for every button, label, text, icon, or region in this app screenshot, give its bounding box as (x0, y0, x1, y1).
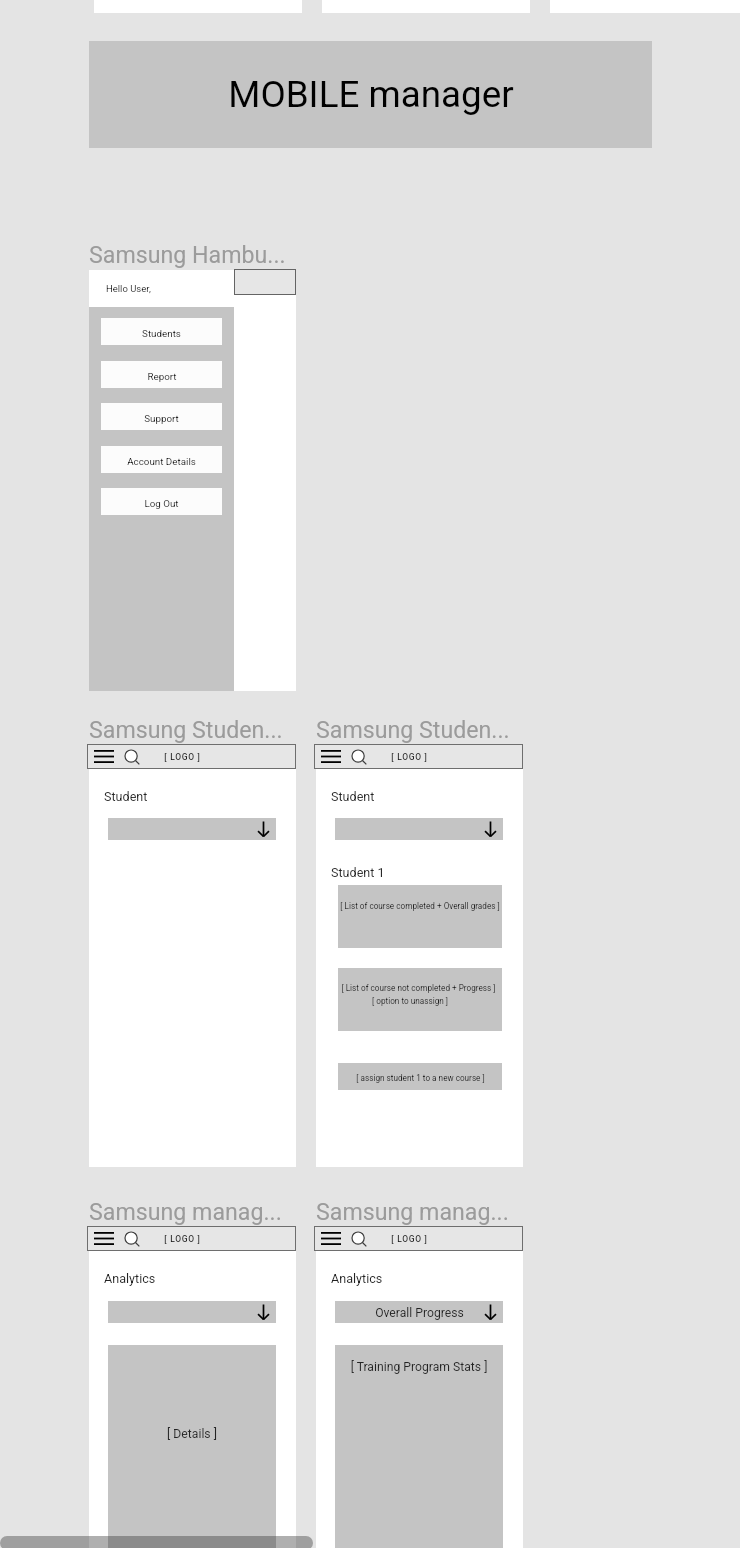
staticText: Samsung Hambu... (89, 241, 286, 268)
other: Expand dropdown (484, 821, 497, 837)
staticText: [ assign student 1 to a new course ] (356, 1073, 485, 1083)
button[interactable]: Account (234, 269, 296, 295)
other: Search (124, 749, 140, 765)
button[interactable]: [ Training Program Stats ] (335, 1345, 503, 1548)
other: Expand dropdown (257, 1304, 270, 1320)
staticText: [ List of course not completed + Progres… (341, 983, 496, 993)
staticText: Account Details (127, 456, 196, 467)
staticText: [ List of course completed + Overall gra… (340, 901, 500, 911)
staticText: Log Out (144, 498, 179, 509)
staticText: MOBILE manager (228, 73, 514, 116)
staticText: Student 1 (331, 865, 385, 880)
button[interactable]: [ Details ] (108, 1345, 276, 1548)
staticText: Students (142, 328, 181, 339)
button[interactable]: Log Out (101, 488, 222, 515)
staticText: [ option to unassign ] (372, 996, 448, 1006)
other: Expand dropdown (257, 821, 270, 837)
staticText: Analytics (331, 1271, 383, 1286)
staticText: [ Details ] (108, 1427, 276, 1441)
button[interactable]: Overall Progress (335, 1301, 503, 1323)
other: Search (124, 1231, 140, 1247)
other: Open navigation menu (321, 1232, 341, 1245)
staticText: Support (144, 413, 179, 424)
staticText: [ LOGO ] (391, 1234, 428, 1244)
staticText: Samsung Studen... (89, 716, 283, 743)
staticText: Analytics (104, 1271, 156, 1286)
other: Search (351, 749, 367, 765)
button[interactable]: [ assign student 1 to a new course ] (338, 1063, 502, 1090)
other: Search (351, 1231, 367, 1247)
staticText: Student (104, 789, 148, 804)
button[interactable]: Expand dropdown (108, 1301, 276, 1323)
staticText: Samsung Studen... (316, 716, 510, 743)
button[interactable]: Open navigation menu (87, 744, 296, 769)
button[interactable]: Expand dropdown (335, 818, 503, 840)
button[interactable]: Students (101, 318, 222, 345)
staticText: Samsung manag... (89, 1198, 282, 1225)
staticText: [ Training Program Stats ] (335, 1360, 503, 1374)
button[interactable]: MOBILE manager (89, 41, 652, 148)
button[interactable]: Open navigation menu (314, 1226, 523, 1251)
button[interactable]: Open navigation menu (87, 1226, 296, 1251)
other: Expand dropdown (484, 1304, 497, 1320)
button[interactable]: Open navigation menu (314, 744, 523, 769)
staticText: Report (147, 371, 177, 382)
button[interactable]: [ List of course not completed + Progres… (338, 968, 502, 1031)
staticText: Hello User, (106, 283, 151, 294)
button[interactable]: Support (101, 403, 222, 430)
other: Open navigation menu (94, 1232, 114, 1245)
button[interactable]: Account Details (101, 446, 222, 473)
staticText: [ LOGO ] (391, 752, 428, 762)
button[interactable]: Horizontal scrollbar (0, 1536, 313, 1548)
other: Open navigation menu (94, 750, 114, 763)
staticText: Samsung manag... (316, 1198, 509, 1225)
staticText: Student (331, 789, 375, 804)
button[interactable]: Expand dropdown (108, 818, 276, 840)
other: Open navigation menu (321, 750, 341, 763)
button[interactable]: [ List of course completed + Overall gra… (338, 885, 502, 948)
staticText: [ LOGO ] (164, 1234, 201, 1244)
staticText: [ LOGO ] (164, 752, 201, 762)
button[interactable]: Report (101, 361, 222, 388)
staticText: Overall Progress (375, 1306, 464, 1320)
